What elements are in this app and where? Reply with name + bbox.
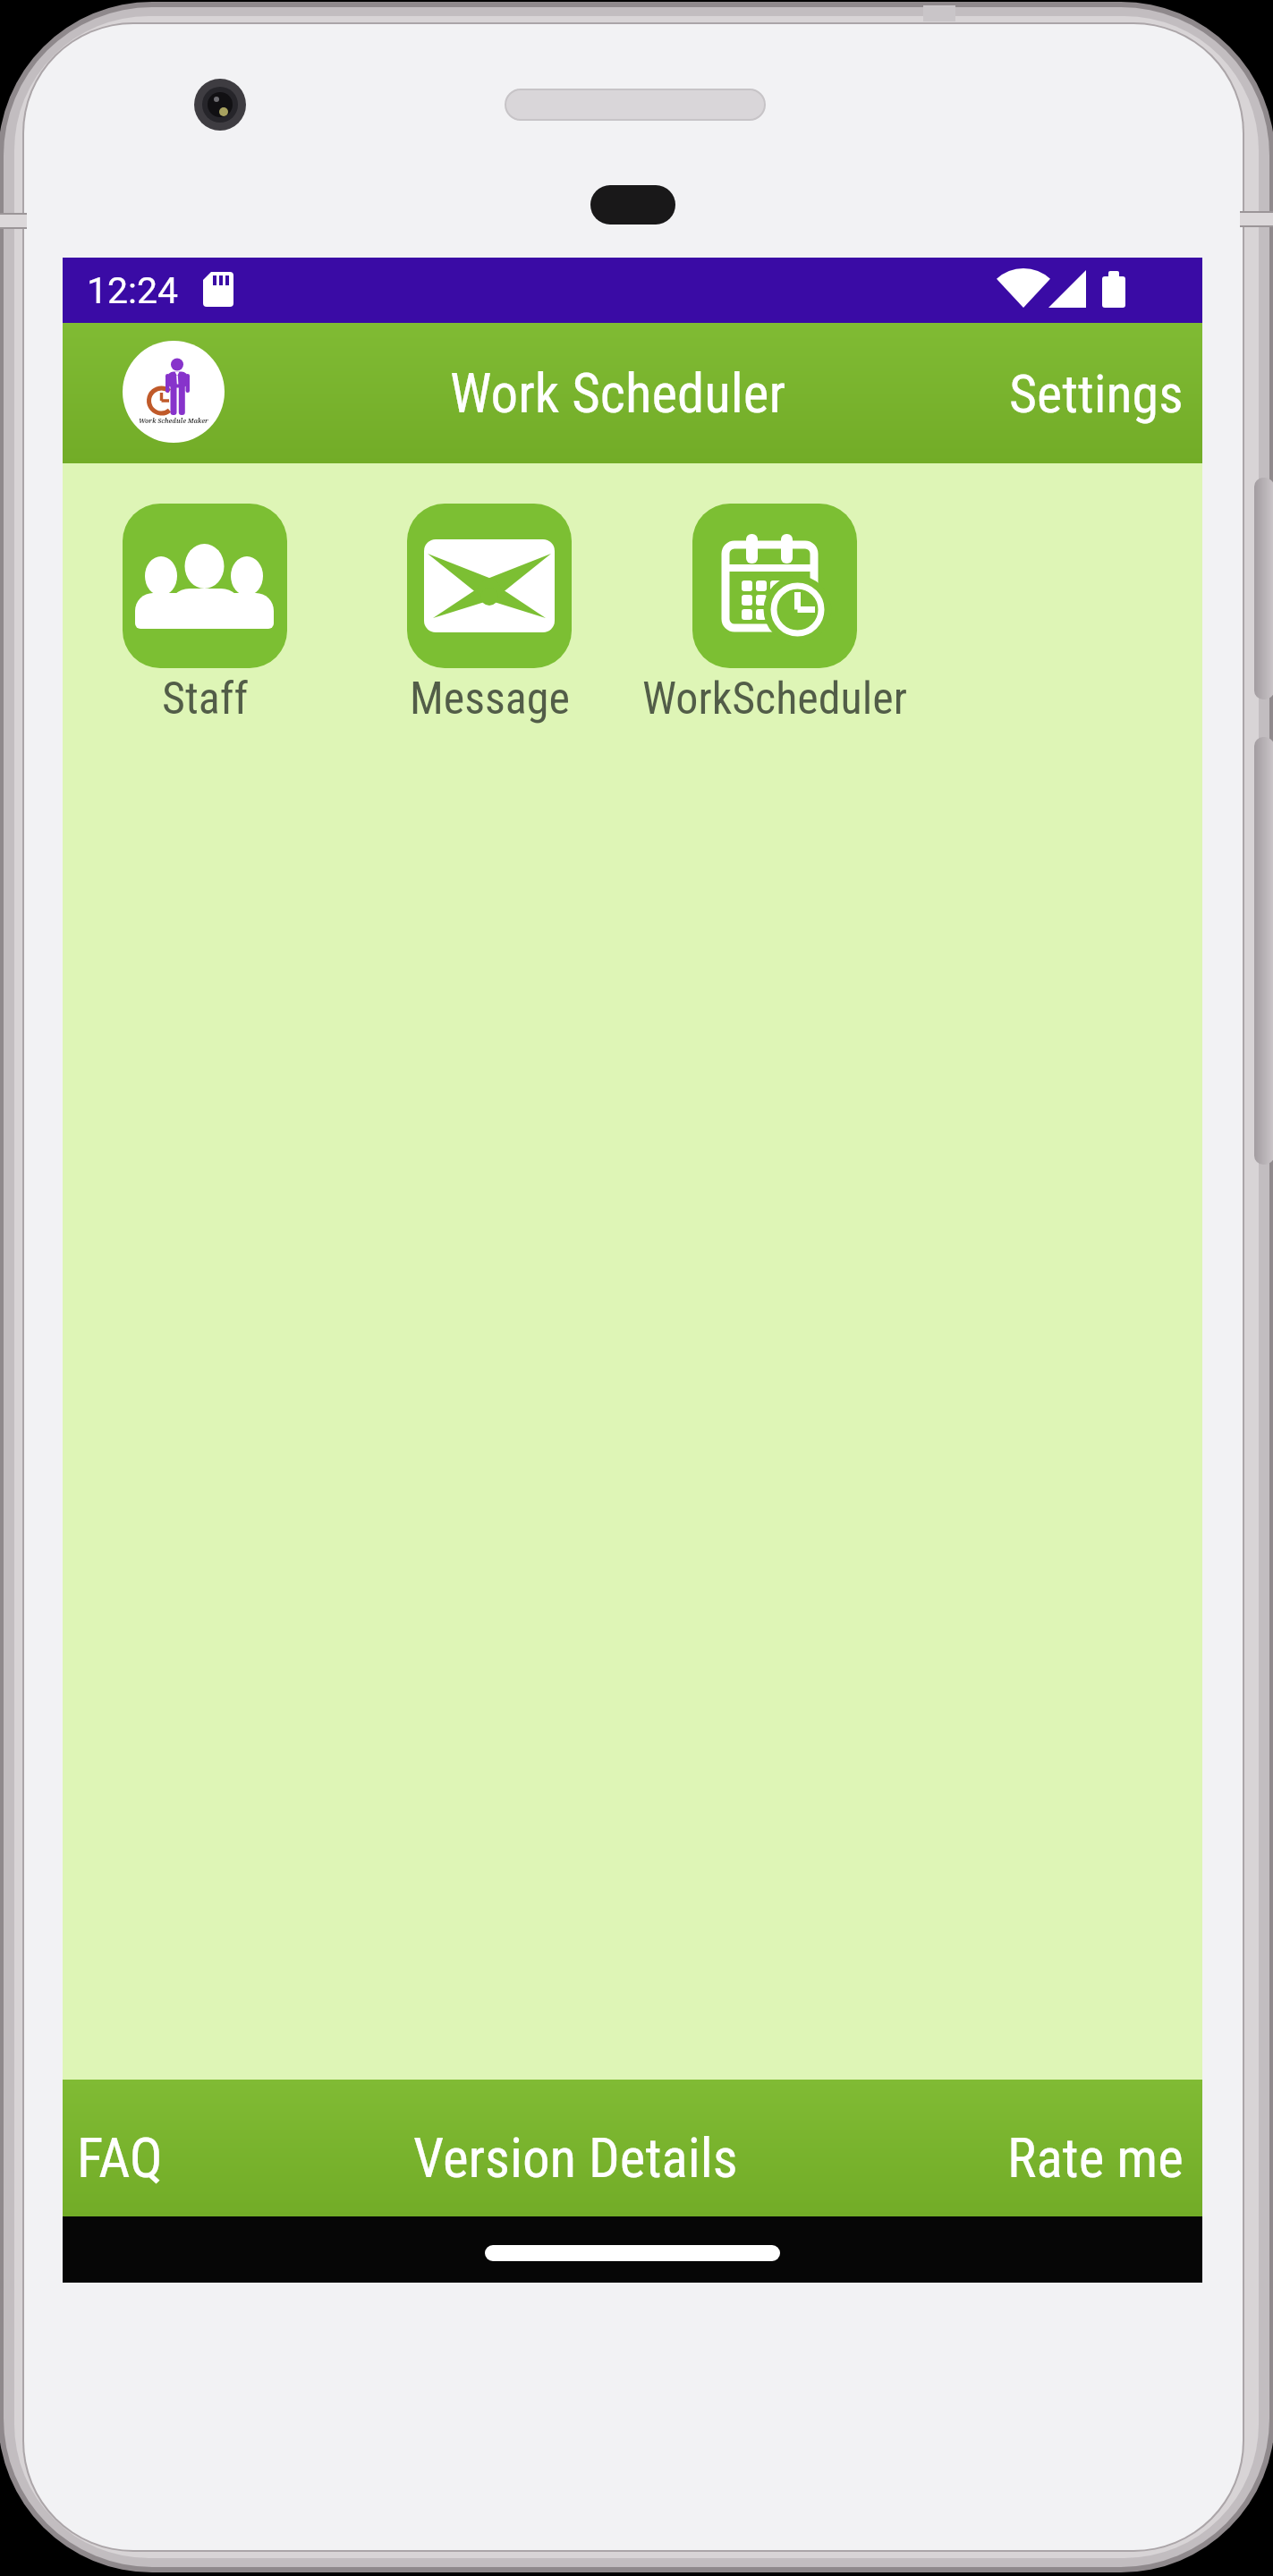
staticText: WorkScheduler <box>642 673 907 725</box>
staticText: Version Details <box>413 2126 738 2190</box>
staticText: Work Scheduler <box>450 361 786 425</box>
button[interactable]: Rate me <box>1007 2126 1202 2190</box>
button[interactable]: FAQ <box>63 2126 163 2190</box>
button[interactable]: Staff <box>63 504 347 725</box>
staticText: Rate me <box>1007 2126 1184 2190</box>
staticText: 12:24 <box>87 269 179 312</box>
staticText: Staff <box>162 673 249 725</box>
staticText: Work Schedule Maker <box>139 417 208 426</box>
button[interactable]: Settings <box>1009 362 1202 425</box>
staticText: Settings <box>1009 362 1184 425</box>
staticText: FAQ <box>77 2126 163 2190</box>
staticText: Message <box>410 673 570 725</box>
button[interactable]: Version Details <box>413 2126 738 2190</box>
button[interactable]: Message <box>347 504 632 725</box>
button[interactable]: WorkScheduler <box>632 504 917 725</box>
button[interactable]: Work Schedule Maker <box>123 341 225 443</box>
